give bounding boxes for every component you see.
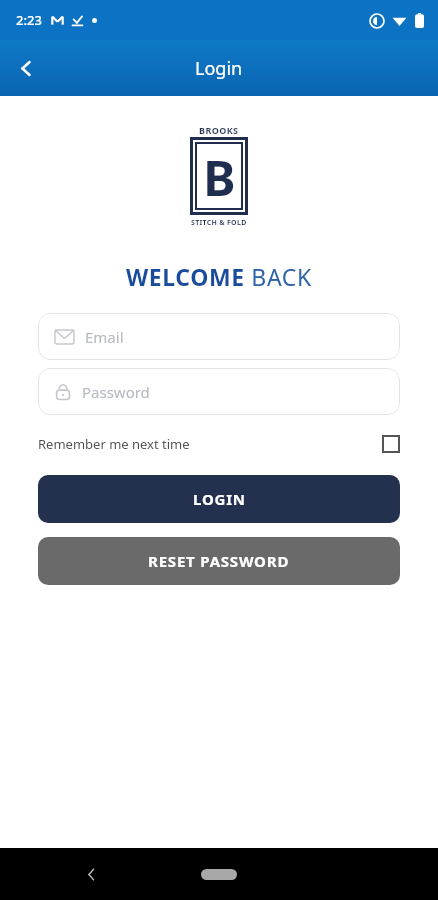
staticText: WELCOME BACK xyxy=(126,261,312,292)
button[interactable]: Back xyxy=(74,857,108,891)
staticText: Password xyxy=(82,382,150,402)
button[interactable]: Remember me next time xyxy=(38,429,400,459)
staticText: Login xyxy=(195,56,243,81)
staticText: Remember me next time xyxy=(38,435,190,453)
button[interactable]: Home xyxy=(201,869,237,880)
staticText: STITCH & FOLD xyxy=(191,218,247,228)
staticText: 2:23 xyxy=(16,11,42,29)
button[interactable]: LOGIN xyxy=(38,475,400,523)
staticText: RESET PASSWORD xyxy=(148,551,290,571)
staticText: LOGIN xyxy=(193,489,246,509)
button[interactable]: Email xyxy=(38,313,400,360)
button[interactable]: Password xyxy=(38,368,400,415)
staticText: B xyxy=(203,144,236,208)
staticText: Email xyxy=(85,327,124,347)
button[interactable]: RESET PASSWORD xyxy=(38,537,400,585)
button[interactable]: Back xyxy=(0,42,52,94)
staticText: BROOKS xyxy=(199,124,239,136)
